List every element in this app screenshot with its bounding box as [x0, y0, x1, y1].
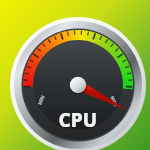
button[interactable]: CPU gauge — [0, 0, 150, 150]
